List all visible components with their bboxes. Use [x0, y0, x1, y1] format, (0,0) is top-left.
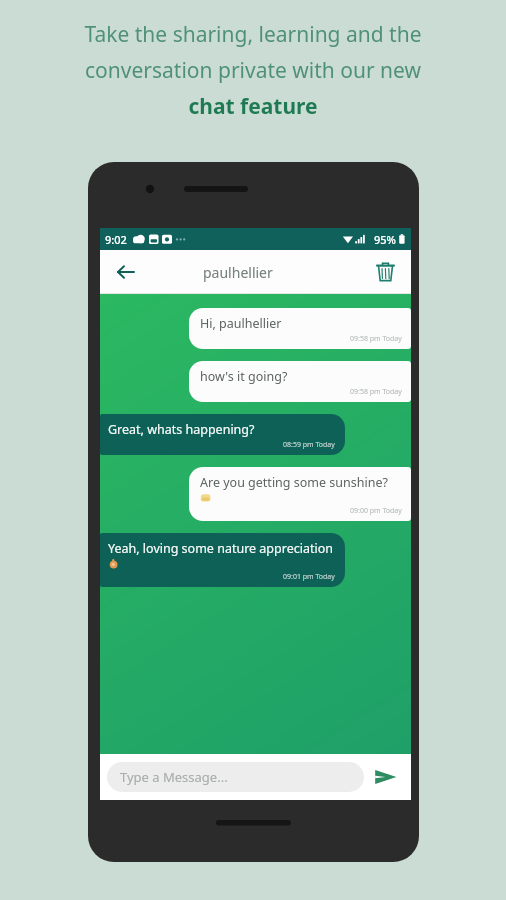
staticText: how's it going? — [200, 368, 288, 385]
staticText: 09:58 pm Today — [350, 334, 402, 344]
staticText: 08:59 pm Today — [283, 440, 335, 450]
staticText: Hi, paulhellier — [200, 315, 282, 332]
button[interactable]: Great, whats happening? — [100, 414, 345, 455]
button[interactable]: Yeah, loving some nature appreciation — [100, 533, 345, 587]
staticText: 95% — [374, 232, 396, 247]
button[interactable]: Hi, paulhellier — [189, 308, 411, 349]
staticText: paulhellier — [203, 263, 273, 282]
staticText: Yeah, loving some nature appreciation — [108, 540, 333, 557]
button[interactable]: Send — [368, 759, 404, 795]
button[interactable]: how's it going? — [189, 361, 411, 402]
button[interactable]: Delete conversation — [367, 254, 403, 290]
staticText: Are you getting some sunshine? — [200, 474, 388, 491]
staticText: Great, whats happening? — [108, 421, 255, 438]
staticText: 9:02 — [105, 232, 127, 247]
button[interactable]: Back — [108, 254, 144, 290]
staticText: chat feature — [188, 92, 318, 121]
staticText: 09:00 pm Today — [350, 506, 402, 516]
button[interactable]: Are you getting some sunshine? — [189, 467, 411, 521]
staticText: 09:58 pm Today — [350, 387, 402, 397]
button[interactable]: paulhellier — [203, 263, 273, 282]
button[interactable]: Type a Message... — [107, 762, 364, 792]
staticText: conversation private with our new — [85, 56, 421, 85]
staticText: Type a Message... — [120, 768, 228, 786]
staticText: 09:01 pm Today — [283, 572, 335, 582]
staticText: Take the sharing, learning and the — [84, 20, 422, 49]
